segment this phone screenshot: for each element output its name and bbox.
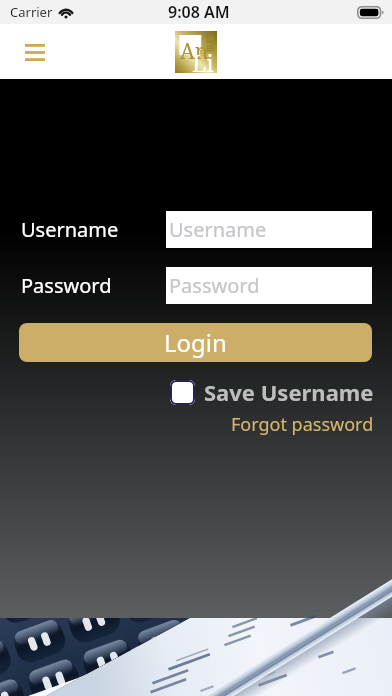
button[interactable]: Password (166, 267, 372, 304)
staticText: Forgot password (231, 412, 374, 437)
button[interactable]: Username (166, 211, 372, 248)
staticText: Username (169, 216, 267, 243)
staticText: Li (192, 47, 214, 78)
staticText: Username (21, 216, 119, 243)
staticText: Login (164, 326, 227, 359)
button[interactable]: Save Username (170, 377, 374, 407)
button[interactable]: Forgot password (231, 412, 374, 437)
staticText: Save Username (204, 377, 374, 407)
staticText: Carrier (10, 3, 53, 21)
button[interactable]: Login (19, 323, 372, 362)
staticText: 9:08 AM (168, 1, 230, 23)
staticText: An (180, 37, 209, 66)
staticText: Password (169, 272, 260, 299)
staticText: Password (21, 272, 112, 299)
button[interactable]: Open navigation menu (12, 29, 58, 75)
